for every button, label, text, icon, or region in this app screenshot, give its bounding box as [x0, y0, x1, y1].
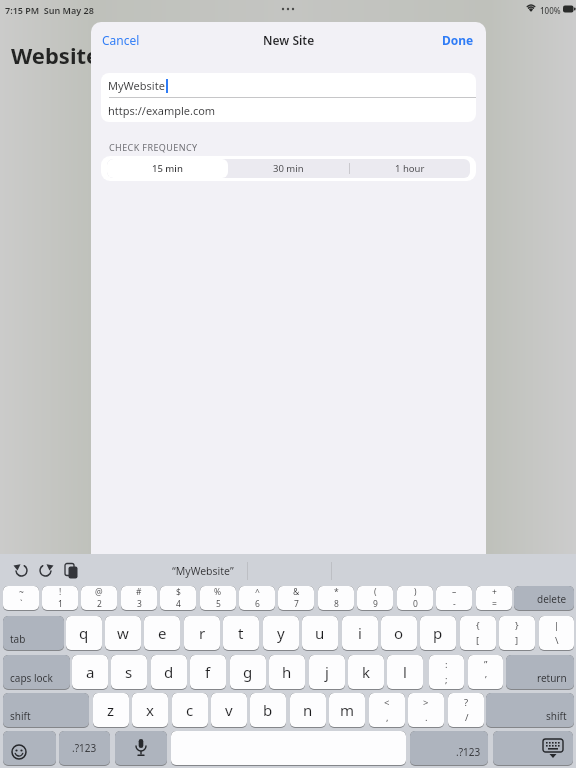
staticText: ; [445, 673, 448, 686]
button[interactable] [493, 731, 573, 766]
staticText: z [107, 700, 115, 720]
button[interactable]: ! [42, 586, 78, 611]
button[interactable]: s [111, 655, 147, 690]
staticText: b [263, 700, 273, 720]
button[interactable]: 15 min [107, 159, 228, 178]
staticText: \ [555, 634, 559, 647]
staticText: “MyWebsite” [172, 564, 234, 578]
button[interactable]: a [72, 655, 108, 690]
staticText: + [492, 586, 497, 598]
button[interactable]: u [302, 616, 338, 651]
button[interactable]: .?123 [59, 731, 110, 766]
button[interactable]: n [290, 693, 326, 728]
button[interactable]: v [211, 693, 247, 728]
button[interactable] [171, 731, 406, 766]
button[interactable]: * [318, 586, 354, 611]
staticText: l [403, 662, 407, 682]
button[interactable]: o [381, 616, 417, 651]
button[interactable]: q [66, 616, 102, 651]
button[interactable]: w [105, 616, 141, 651]
staticText: 7:15 PM Sun May 28 [5, 4, 94, 16]
button[interactable]: k [348, 655, 384, 690]
button[interactable]: > [408, 693, 444, 728]
button[interactable]: & [278, 586, 314, 611]
staticText: k [362, 662, 371, 682]
button[interactable]: https://example.com [101, 98, 476, 122]
staticText: MyWebsite [108, 78, 165, 93]
button[interactable]: z [93, 693, 129, 728]
button[interactable]: < [369, 693, 405, 728]
staticText: h [282, 662, 292, 682]
button[interactable]: | [539, 616, 574, 651]
button[interactable]: } [499, 616, 535, 651]
button[interactable]: 1 hour [349, 159, 470, 178]
button[interactable]: % [200, 586, 236, 611]
button[interactable]: i [342, 616, 378, 651]
staticText: o [394, 623, 404, 643]
staticText: = [492, 598, 497, 610]
staticText: r [199, 623, 206, 643]
button[interactable]: ” [468, 655, 503, 690]
button[interactable]: d [151, 655, 187, 690]
button[interactable]: b [250, 693, 286, 728]
button[interactable]: { [460, 616, 496, 651]
button[interactable]: MyWebsite [101, 73, 476, 97]
button[interactable]: ) [397, 586, 433, 611]
staticText: shift [546, 709, 567, 723]
button[interactable]: c [172, 693, 208, 728]
button[interactable]: r [184, 616, 220, 651]
button[interactable]: # [121, 586, 157, 611]
button[interactable]: ~ [3, 586, 39, 611]
button[interactable]: caps lock [3, 655, 70, 690]
button[interactable]: 30 min [228, 159, 349, 178]
button[interactable]: p [420, 616, 456, 651]
staticText: w [117, 623, 129, 643]
staticText: p [433, 623, 443, 643]
staticText: & [293, 586, 300, 598]
button[interactable]: tab [3, 616, 64, 651]
button[interactable] [115, 731, 167, 766]
staticText: v [225, 700, 233, 720]
staticText: 100% [540, 5, 561, 16]
button[interactable]: : [429, 655, 464, 690]
button[interactable] [3, 731, 56, 766]
button[interactable]: shift [3, 693, 89, 728]
staticText: < [384, 696, 390, 709]
button[interactable]: @ [81, 586, 117, 611]
staticText: ] [515, 634, 519, 647]
staticText: q [79, 623, 89, 643]
button[interactable]: Done [442, 32, 474, 48]
button[interactable]: shift [486, 693, 574, 728]
button[interactable]: delete [514, 586, 574, 611]
button[interactable]: $ [160, 586, 196, 611]
button[interactable]: ( [357, 586, 393, 611]
button[interactable]: g [230, 655, 266, 690]
button[interactable]: Cancel [102, 32, 140, 48]
staticText: ? [464, 696, 469, 709]
button[interactable]: h [269, 655, 305, 690]
button[interactable]: y [263, 616, 299, 651]
button[interactable]: .?123 [410, 731, 488, 766]
button[interactable]: m [329, 693, 365, 728]
button[interactable]: f [190, 655, 226, 690]
staticText: i [358, 623, 362, 643]
button[interactable]: ? [448, 693, 484, 728]
staticText: - [453, 598, 456, 610]
staticText: .?123 [456, 745, 481, 759]
staticText: u [315, 623, 325, 643]
staticText: e [158, 623, 167, 643]
staticText: caps lock [10, 671, 53, 685]
button[interactable]: ^ [239, 586, 275, 611]
button[interactable]: + [476, 586, 512, 611]
button[interactable]: – [436, 586, 472, 611]
staticText: delete [537, 592, 567, 606]
staticText: 4 [176, 598, 181, 610]
button[interactable]: x [132, 693, 168, 728]
button[interactable]: l [387, 655, 423, 690]
button[interactable]: return [506, 655, 574, 690]
button[interactable]: j [309, 655, 345, 690]
button[interactable]: e [144, 616, 180, 651]
staticText: m [340, 700, 355, 720]
button[interactable]: t [223, 616, 259, 651]
staticText: / [465, 711, 469, 724]
